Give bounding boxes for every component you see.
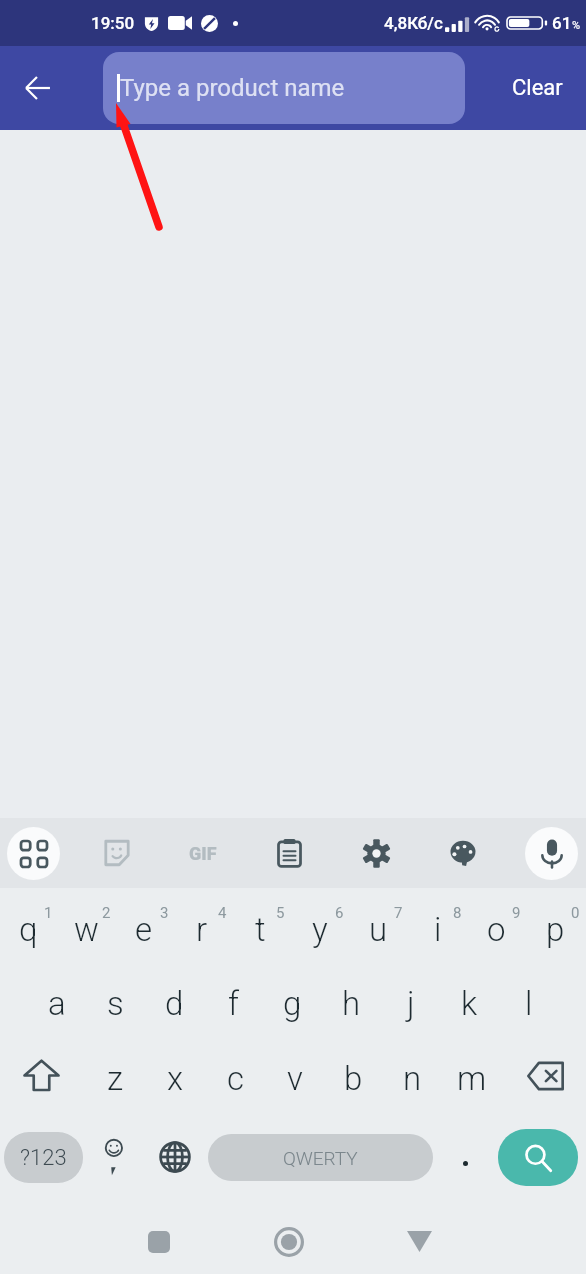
- staticText: 0: [571, 904, 580, 922]
- button[interactable]: Shift: [0, 1038, 85, 1113]
- staticText: n: [403, 1059, 422, 1098]
- staticText: m: [457, 1059, 487, 1098]
- staticText: y: [312, 910, 328, 949]
- button[interactable]: Recents: [94, 1201, 224, 1274]
- button[interactable]: i: [409, 888, 468, 963]
- button[interactable]: t: [232, 888, 291, 963]
- staticText: ?123: [20, 1145, 67, 1171]
- button[interactable]: r: [174, 888, 232, 963]
- staticText: 6: [335, 904, 344, 922]
- button[interactable]: q: [0, 888, 58, 963]
- staticText: 19:50: [91, 13, 135, 33]
- staticText: x: [167, 1059, 184, 1098]
- staticText: %: [572, 19, 581, 32]
- staticText: 61: [552, 13, 572, 33]
- button[interactable]: Themes: [433, 818, 493, 888]
- staticText: 4: [218, 904, 227, 922]
- staticText: c: [227, 1059, 244, 1098]
- button[interactable]: [433, 1117, 498, 1197]
- button[interactable]: d: [145, 963, 204, 1038]
- button[interactable]: b: [324, 1038, 383, 1113]
- staticText: 8: [453, 904, 462, 922]
- button[interactable]: GIF: [173, 818, 233, 888]
- button[interactable]: Emoji: [83, 1117, 144, 1197]
- button[interactable]: Clipboard: [259, 818, 319, 888]
- staticText: 9: [512, 904, 521, 922]
- button[interactable]: Clear: [465, 46, 586, 130]
- staticText: z: [107, 1059, 124, 1098]
- button[interactable]: Change language: [144, 1117, 205, 1197]
- button[interactable]: z: [85, 1038, 145, 1113]
- button[interactable]: o: [468, 888, 527, 963]
- staticText: l: [525, 984, 533, 1023]
- staticText: s: [107, 984, 124, 1023]
- button[interactable]: v: [265, 1038, 324, 1113]
- staticText: g: [283, 984, 302, 1023]
- button[interactable]: Home: [224, 1201, 354, 1274]
- staticText: p: [546, 910, 565, 949]
- staticText: 4,8Кб/c: [384, 13, 443, 33]
- staticText: a: [48, 984, 66, 1023]
- button[interactable]: ?123: [4, 1132, 83, 1183]
- button[interactable]: j: [381, 963, 440, 1038]
- button[interactable]: QWERTY: [208, 1134, 433, 1181]
- staticText: r: [196, 910, 208, 949]
- staticText: GIF: [189, 843, 217, 864]
- button[interactable]: l: [499, 963, 558, 1038]
- staticText: 2: [102, 904, 111, 922]
- button[interactable]: Settings: [346, 818, 406, 888]
- staticText: e: [135, 910, 153, 949]
- staticText: d: [165, 984, 184, 1023]
- button[interactable]: g: [263, 963, 322, 1038]
- staticText: f: [228, 984, 239, 1023]
- staticText: 1: [44, 904, 53, 922]
- button[interactable]: Voice input: [516, 818, 586, 888]
- button[interactable]: k: [440, 963, 499, 1038]
- button[interactable]: x: [145, 1038, 205, 1113]
- button[interactable]: m: [442, 1038, 501, 1113]
- button[interactable]: y: [291, 888, 350, 963]
- staticText: Clear: [512, 75, 563, 101]
- button[interactable]: Type a product name: [103, 52, 465, 124]
- staticText: q: [19, 910, 38, 949]
- staticText: QWERTY: [283, 1147, 358, 1169]
- staticText: v: [287, 1059, 303, 1098]
- staticText: 5: [276, 904, 285, 922]
- button[interactable]: Stickers: [87, 818, 147, 888]
- staticText: w: [74, 910, 99, 949]
- staticText: t: [255, 910, 266, 949]
- staticText: i: [434, 910, 442, 949]
- button[interactable]: Search: [498, 1129, 578, 1186]
- staticText: o: [487, 910, 506, 949]
- button[interactable]: e: [116, 888, 174, 963]
- staticText: 7: [394, 904, 403, 922]
- staticText: j: [407, 984, 415, 1023]
- button[interactable]: Back: [354, 1201, 484, 1274]
- button[interactable]: p: [527, 888, 586, 963]
- button[interactable]: c: [205, 1038, 265, 1113]
- button[interactable]: Backspace: [501, 1038, 586, 1113]
- button[interactable]: w: [58, 888, 116, 963]
- staticText: b: [344, 1059, 363, 1098]
- button[interactable]: Back: [0, 46, 103, 130]
- button[interactable]: u: [350, 888, 409, 963]
- button[interactable]: Keyboard modes: [0, 818, 66, 888]
- button[interactable]: a: [28, 963, 86, 1038]
- button[interactable]: h: [322, 963, 381, 1038]
- staticText: k: [461, 984, 478, 1023]
- button[interactable]: n: [383, 1038, 442, 1113]
- staticText: 3: [160, 904, 169, 922]
- staticText: h: [342, 984, 361, 1023]
- staticText: Type a product name: [120, 74, 345, 102]
- staticText: u: [369, 910, 388, 949]
- button[interactable]: f: [204, 963, 263, 1038]
- button[interactable]: s: [86, 963, 145, 1038]
